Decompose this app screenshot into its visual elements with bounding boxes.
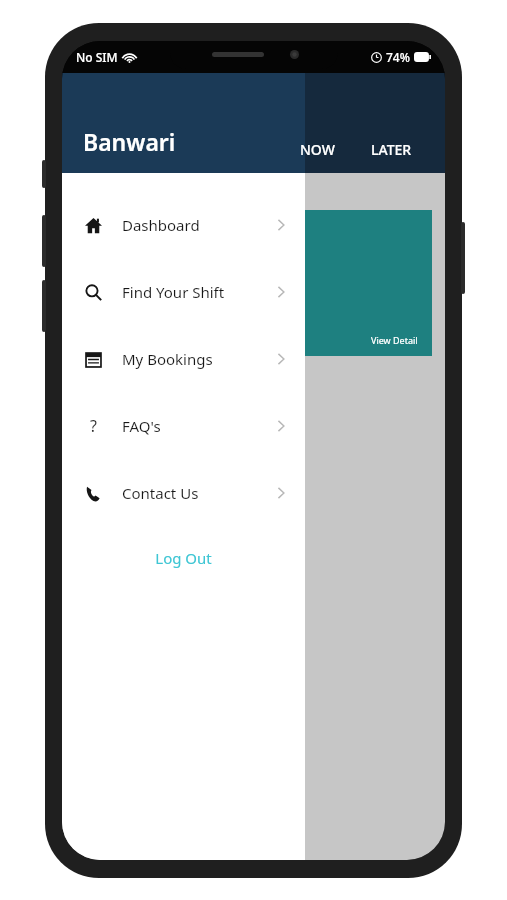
button[interactable]: Log Out bbox=[62, 548, 305, 568]
button[interactable]: Contact Us bbox=[62, 459, 305, 526]
staticText: My Bookings bbox=[122, 349, 213, 369]
staticText: Log Out bbox=[155, 548, 212, 568]
staticText: No SIM bbox=[76, 49, 118, 65]
button[interactable]: ? bbox=[62, 392, 305, 459]
staticText: FAQ's bbox=[122, 416, 161, 436]
button[interactable]: Find Your Shift bbox=[62, 258, 305, 325]
staticText: View Detail bbox=[371, 334, 418, 346]
button[interactable]: LATER bbox=[371, 140, 412, 159]
staticText: LATER bbox=[371, 140, 412, 159]
staticText: Find Your Shift bbox=[122, 282, 225, 302]
staticText: ? bbox=[90, 415, 97, 437]
button[interactable]: My Bookings bbox=[62, 325, 305, 392]
staticText: 74% bbox=[386, 49, 410, 65]
staticText: Dashboard bbox=[122, 215, 200, 235]
staticText: NOW bbox=[300, 140, 335, 159]
button[interactable]: Dashboard bbox=[62, 191, 305, 258]
staticText: Banwari bbox=[83, 126, 176, 157]
staticText: Contact Us bbox=[122, 483, 199, 503]
staticText: United Kingdom bbox=[118, 297, 203, 312]
button[interactable]: United Kingdom bbox=[102, 210, 432, 356]
button[interactable]: NOW bbox=[300, 140, 335, 159]
